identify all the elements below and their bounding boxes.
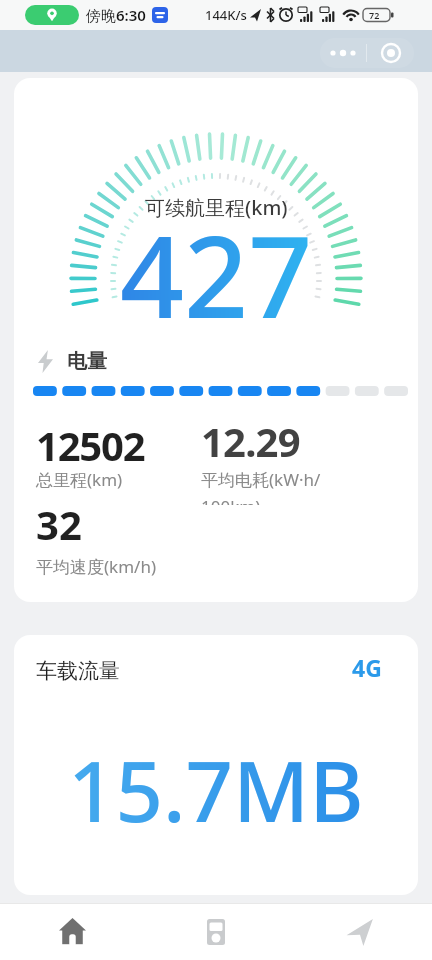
staticText: 12502 [36,418,145,472]
staticText: 车载流量 [36,658,120,684]
staticText: 72 [369,9,380,21]
staticText: 可续航里程(km) [145,194,288,221]
button[interactable] [144,903,288,960]
staticText: 平均速度(km/h) [36,555,157,578]
staticText: 32 [36,497,82,551]
staticText: 15.7MB [68,733,364,846]
button[interactable] [288,903,432,960]
staticText: 傍晚6:30 [86,5,146,25]
button[interactable] [25,5,79,25]
staticText: 电量 [67,349,107,374]
staticText: 144K/s [205,6,247,24]
staticText: 427 [120,198,313,351]
staticText: 12.29 [201,414,300,468]
button[interactable] [320,38,366,68]
button[interactable] [0,903,144,960]
staticText: 总里程(km) [36,468,123,491]
staticText: 平均电耗(kW·h/ 100km) [201,468,321,505]
staticText: 4G [352,652,382,683]
button[interactable] [367,38,414,68]
